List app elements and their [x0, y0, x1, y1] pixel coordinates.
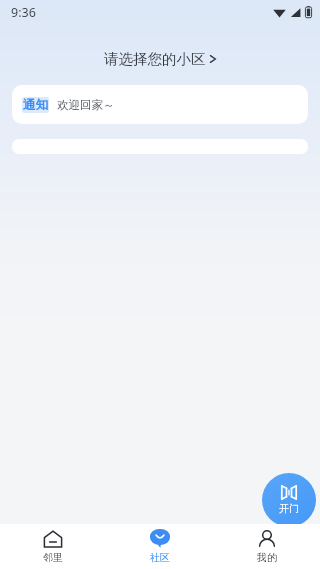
staticText: 通知: [23, 97, 48, 113]
button[interactable]: 通知: [12, 85, 308, 124]
staticText: 社区: [150, 551, 170, 564]
staticText: 开门: [279, 502, 299, 515]
button[interactable]: 社区: [106, 524, 213, 569]
button[interactable]: 我的: [213, 524, 320, 569]
staticText: 我的: [257, 551, 277, 564]
button[interactable]: 邻里: [0, 524, 106, 569]
staticText: 请选择您的小区: [104, 50, 206, 68]
button[interactable]: 请选择您的小区: [0, 50, 320, 68]
staticText: 9:36: [11, 4, 36, 21]
staticText: 欢迎回家～: [57, 98, 115, 112]
button[interactable]: 开门: [262, 473, 316, 527]
staticText: 邻里: [43, 551, 63, 564]
